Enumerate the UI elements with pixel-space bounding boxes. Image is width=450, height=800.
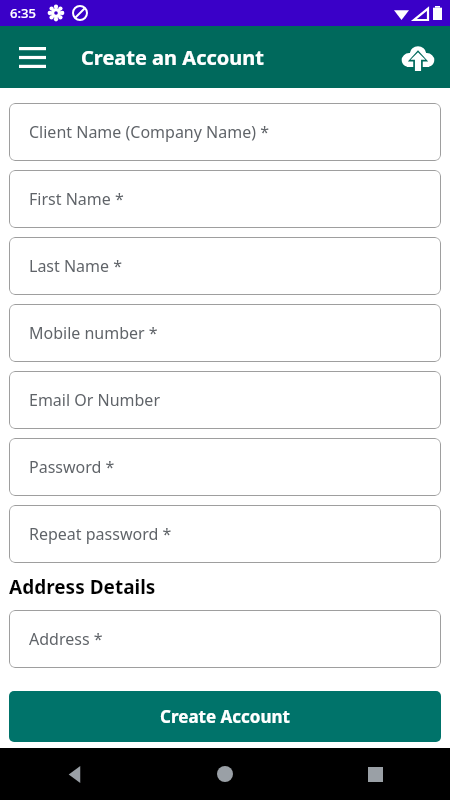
staticText: Last Name * — [29, 255, 123, 277]
button[interactable]: Address * — [9, 610, 441, 668]
staticText: Create Account — [160, 705, 290, 728]
button[interactable]: Repeat password * — [9, 505, 441, 563]
button[interactable]: Create Account — [9, 691, 441, 742]
button[interactable]: Recent apps — [300, 748, 450, 800]
staticText: Create an Account — [81, 44, 264, 71]
button[interactable]: Home — [150, 748, 300, 800]
button[interactable]: Last Name * — [9, 237, 441, 295]
staticText: Password * — [29, 456, 115, 478]
button[interactable]: Upload — [394, 33, 442, 81]
staticText: First Name * — [29, 188, 124, 210]
button[interactable]: Client Name (Company Name) * — [9, 103, 441, 161]
staticText: Client Name (Company Name) * — [29, 121, 269, 143]
button[interactable]: Mobile number * — [9, 304, 441, 362]
staticText: Mobile number * — [29, 322, 158, 344]
button[interactable]: First Name * — [9, 170, 441, 228]
button[interactable]: Back — [0, 748, 150, 800]
staticText: Address Details — [9, 574, 156, 600]
staticText: 6:35 — [10, 4, 36, 22]
button[interactable]: Password * — [9, 438, 441, 496]
button[interactable]: Open navigation menu — [10, 35, 54, 79]
staticText: Address * — [29, 628, 103, 650]
staticText: Repeat password * — [29, 523, 172, 545]
button[interactable]: Email Or Number — [9, 371, 441, 429]
staticText: Email Or Number — [29, 389, 160, 411]
